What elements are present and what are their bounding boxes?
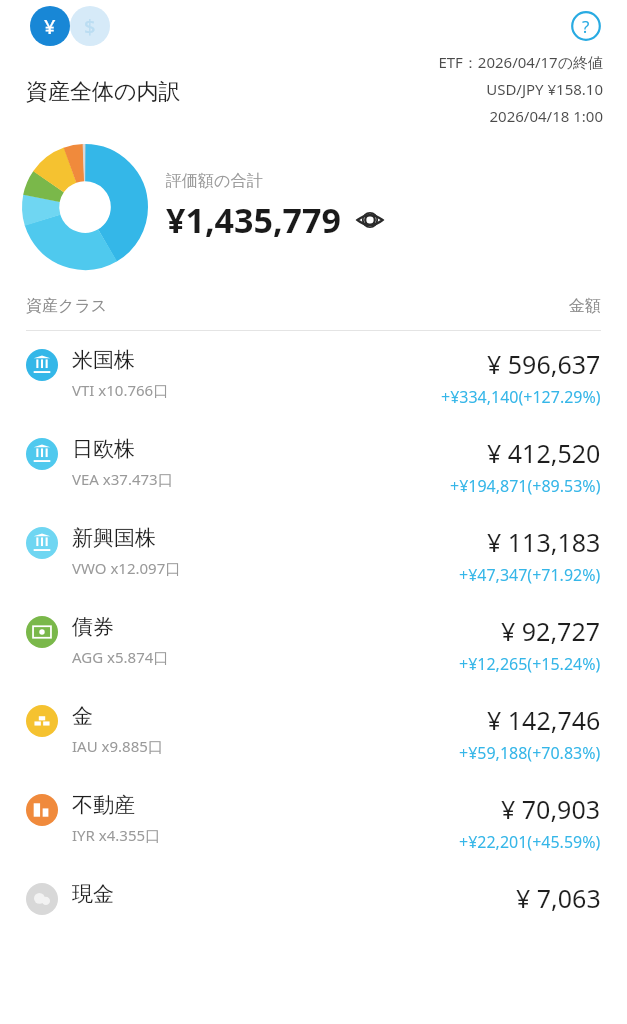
- staticText: VEA x37.473口: [72, 469, 173, 489]
- staticText: VWO x12.097口: [72, 558, 181, 578]
- staticText: 資産クラス: [26, 296, 108, 316]
- staticText: +¥59,188(+70.83%): [459, 742, 601, 764]
- button[interactable]: 金額の表示切替: [353, 203, 387, 237]
- staticText: ¥ 113,183: [487, 525, 601, 559]
- button[interactable]: 現金: [0, 865, 627, 927]
- staticText: 日欧株: [72, 436, 135, 462]
- button[interactable]: 日本円表示: [30, 6, 70, 46]
- staticText: ¥ 92,727: [501, 614, 601, 648]
- staticText: 資産全体の内訳: [26, 78, 181, 106]
- button[interactable]: 金: [0, 687, 627, 776]
- staticText: IYR x4.355口: [72, 825, 161, 845]
- staticText: AGG x5.874口: [72, 647, 169, 667]
- staticText: ?: [582, 15, 590, 38]
- button[interactable]: 新興国株: [0, 509, 627, 598]
- staticText: VTI x10.766口: [72, 380, 169, 400]
- staticText: USD/JPY ¥158.10: [486, 79, 603, 99]
- staticText: ¥ 7,063: [516, 881, 601, 915]
- staticText: +¥22,201(+45.59%): [459, 831, 601, 853]
- staticText: ¥ 142,746: [487, 703, 601, 737]
- staticText: 新興国株: [72, 525, 156, 551]
- staticText: ¥: [44, 13, 56, 40]
- staticText: ¥1,435,779: [166, 197, 341, 243]
- button[interactable]: ヘルプ: [569, 9, 603, 43]
- staticText: ¥ 596,637: [487, 347, 601, 381]
- staticText: 債券: [72, 614, 114, 640]
- staticText: 2026/04/18 1:00: [489, 106, 603, 126]
- button[interactable]: 米ドル表示: [70, 6, 110, 46]
- staticText: ¥ 412,520: [487, 436, 601, 470]
- staticText: IAU x9.885口: [72, 736, 163, 756]
- button[interactable]: 債券: [0, 598, 627, 687]
- staticText: 金: [72, 703, 93, 729]
- staticText: +¥334,140(+127.29%): [441, 386, 601, 408]
- staticText: 評価額の合計: [166, 171, 263, 191]
- staticText: 現金: [72, 881, 114, 907]
- staticText: 金額: [569, 296, 601, 316]
- staticText: +¥194,871(+89.53%): [450, 475, 601, 497]
- button[interactable]: 米国株: [0, 331, 627, 420]
- staticText: +¥47,347(+71.92%): [459, 564, 601, 586]
- staticText: $: [84, 13, 96, 40]
- button[interactable]: 日欧株: [0, 420, 627, 509]
- staticText: 不動産: [72, 792, 135, 818]
- staticText: +¥12,265(+15.24%): [459, 653, 601, 675]
- staticText: 米国株: [72, 347, 135, 373]
- staticText: ¥ 70,903: [501, 792, 601, 826]
- staticText: ETF：2026/04/17の終値: [438, 52, 603, 72]
- button[interactable]: 不動産: [0, 776, 627, 865]
